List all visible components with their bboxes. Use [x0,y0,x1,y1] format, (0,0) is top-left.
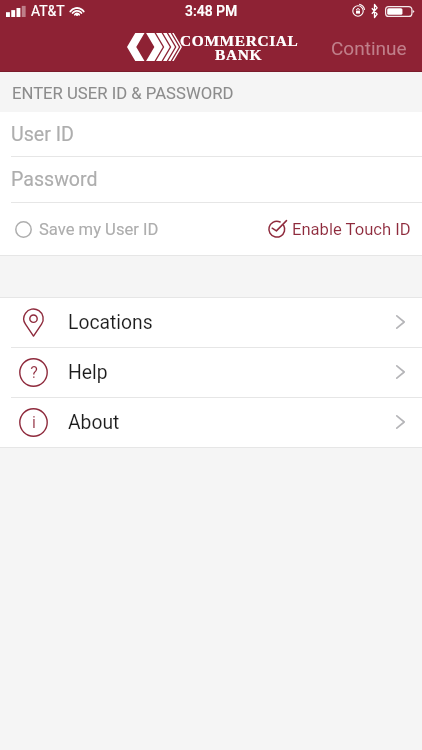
staticText: Continue [331,37,407,59]
button[interactable]: Locations [0,298,422,347]
button[interactable]: User ID [0,112,422,156]
staticText: BANK [215,46,263,63]
staticText: ? [30,363,38,382]
staticText: Help [68,361,108,384]
staticText: AT&T [31,3,65,19]
button[interactable]: i [0,398,422,447]
staticText: User ID [11,123,74,146]
staticText: About [68,411,120,434]
staticText: Save my User ID [39,220,159,239]
button[interactable]: Password [0,157,422,202]
staticText: ENTER USER ID & PASSWORD [12,84,234,104]
button[interactable]: Enable Touch ID [258,211,422,247]
button[interactable]: Continue [314,29,422,67]
staticText: i [32,413,36,432]
button[interactable]: Save my User ID [0,212,169,247]
staticText: Locations [68,311,153,334]
staticText: 3:48 PM [185,3,238,19]
staticText: Password [11,168,98,191]
staticText: COMMERCIAL [180,32,299,49]
button[interactable]: ? [0,348,422,397]
staticText: Enable Touch ID [292,220,411,239]
